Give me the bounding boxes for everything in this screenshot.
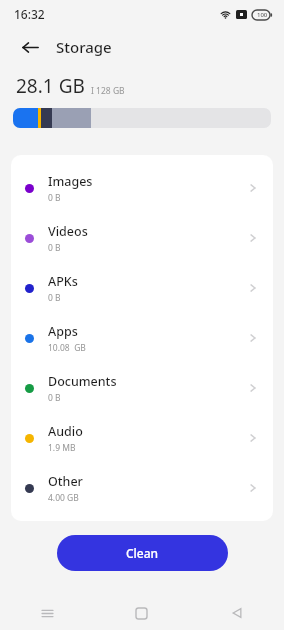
button[interactable]: Back [189,596,284,630]
staticText: 1.9 MB [48,442,76,454]
staticText: 0 B [48,392,61,404]
button[interactable]: Apps [11,313,273,363]
button[interactable]: Back [16,33,44,61]
staticText: Images [48,173,93,190]
staticText: I 128 GB [91,85,125,97]
staticText: 10.08 GB [48,342,86,354]
button[interactable]: Videos [11,213,273,263]
button[interactable]: Home [94,596,189,630]
button[interactable]: Documents [11,363,273,413]
staticText: APKs [48,273,78,290]
staticText: Videos [48,223,88,240]
staticText: Other [48,473,83,490]
staticText: Documents [48,373,117,390]
staticText: 100 [257,11,268,19]
staticText: Audio [48,423,83,440]
button[interactable]: APKs [11,263,273,313]
staticText: 16:32 [14,6,45,22]
staticText: 0 B [48,192,61,204]
button[interactable]: Audio [11,413,273,463]
staticText: 0 B [48,242,61,254]
staticText: 4.00 GB [48,492,79,504]
button[interactable]: Images [11,163,273,213]
staticText: Storage [56,37,112,57]
staticText: 28.1 GB [16,73,85,99]
button[interactable]: Clean [57,535,228,571]
staticText: 0 B [48,292,61,304]
staticText: Apps [48,323,78,340]
button[interactable]: Other [11,463,273,513]
button[interactable]: Recents [0,596,94,630]
staticText: Clean [126,545,159,561]
